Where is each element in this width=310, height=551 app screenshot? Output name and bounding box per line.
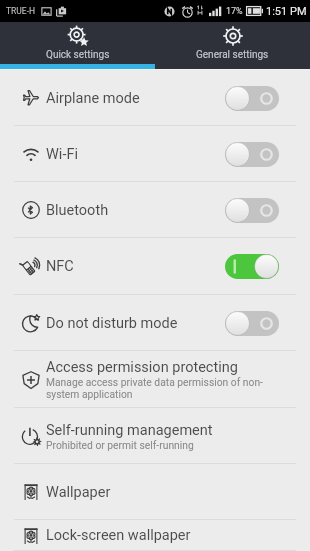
button[interactable]: Switch off <box>225 142 279 167</box>
staticText: Quick settings <box>46 49 110 61</box>
button[interactable]: Bluetooth <box>0 182 310 238</box>
button[interactable]: Self-running management <box>0 408 310 464</box>
button[interactable]: General settings <box>155 22 310 64</box>
staticText: Prohibited or permit self-running <box>46 439 194 451</box>
staticText: Wi-Fi <box>46 146 225 163</box>
staticText: Airplane mode <box>46 90 225 107</box>
button[interactable]: Switch on <box>225 254 279 279</box>
button[interactable]: Switch off <box>225 86 279 111</box>
button[interactable]: Airplane mode <box>0 70 310 126</box>
staticText: 17% <box>226 6 243 17</box>
button[interactable]: Quick settings <box>0 22 155 64</box>
staticText: Bluetooth <box>46 202 225 219</box>
button[interactable]: Switch off <box>225 311 279 336</box>
staticText: NFC <box>46 258 225 275</box>
staticText: Lock-screen wallpaper <box>46 527 191 544</box>
staticText: Access permission protecting <box>46 359 238 376</box>
staticText: Wallpaper <box>46 484 111 501</box>
button[interactable]: Do not disturb mode <box>0 295 310 351</box>
staticText: General settings <box>196 49 269 61</box>
staticText: Do not disturb mode <box>46 315 225 332</box>
button[interactable]: Wallpaper <box>0 464 310 520</box>
staticText: TRUE-H <box>6 6 36 16</box>
button[interactable]: Lock-screen wallpaper <box>0 520 310 551</box>
staticText: Manage access private data permission of… <box>46 376 296 400</box>
staticText: Self-running management <box>46 422 213 439</box>
staticText: 1:51 PM <box>266 5 307 18</box>
button[interactable]: Access permission protecting <box>0 351 310 408</box>
button[interactable]: Switch off <box>225 198 279 223</box>
button[interactable]: NFC <box>0 238 310 295</box>
button[interactable]: Wi-Fi <box>0 126 310 182</box>
